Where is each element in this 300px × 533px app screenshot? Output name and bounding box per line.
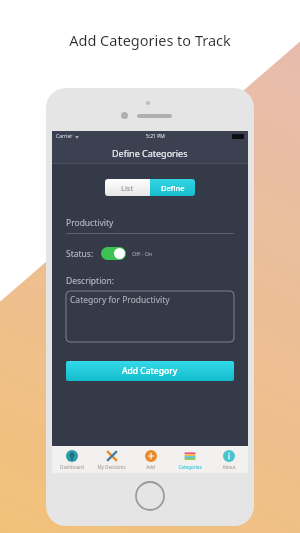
button[interactable]: List [105,179,150,196]
button[interactable]: About [209,446,248,473]
staticText: My Decisions [97,464,126,470]
staticText: Description: [66,275,115,287]
staticText: 5:21 PM [146,133,165,140]
staticText: Category for Productivity [70,294,170,306]
staticText: Dashboard [60,464,84,470]
staticText: Off - On [132,250,153,257]
staticText: About [222,464,236,470]
staticText: Add [146,464,155,470]
button[interactable]: Add [131,446,170,473]
staticText: List [121,183,134,193]
button[interactable]: Define [150,179,195,196]
button[interactable]: Status on [101,247,126,260]
staticText: Define [161,183,185,193]
staticText: Categories [178,464,202,470]
staticText: Define Categories [112,147,188,159]
button[interactable]: Dashboard [52,446,92,473]
staticText: Status: [66,248,94,260]
button[interactable]: Category for Productivity [66,291,234,342]
staticText: Add Category [122,365,178,377]
staticText: Add Categories to Track [0,30,300,50]
button[interactable]: Categories [170,446,209,473]
staticText: Productivity [66,217,114,229]
button[interactable]: My Decisions [92,446,131,473]
staticText: Carrier [56,133,73,140]
button[interactable]: Add Category [66,361,234,381]
